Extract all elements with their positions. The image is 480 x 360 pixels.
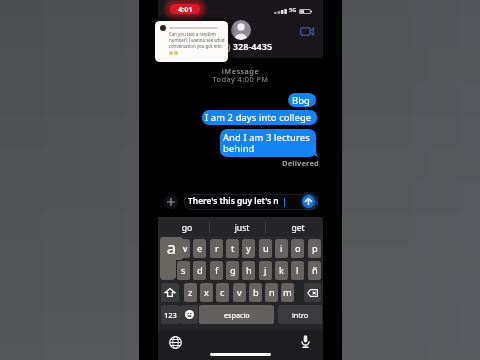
staticText: i: [280, 242, 283, 255]
staticText: v: [237, 286, 242, 299]
staticText: m: [283, 286, 292, 299]
button[interactable]: I am 2 days into college: [202, 110, 317, 125]
button[interactable]: f: [210, 261, 223, 280]
staticText: ñ: [312, 264, 318, 277]
staticText: b: [253, 286, 259, 299]
button[interactable]: l: [291, 261, 304, 280]
staticText: q: [165, 242, 171, 255]
staticText: 123: [164, 310, 177, 320]
staticText: f: [215, 264, 219, 277]
button[interactable]: p: [308, 239, 321, 258]
button[interactable]: Bbg: [288, 93, 316, 107]
button[interactable]: s: [177, 261, 190, 280]
staticText: Delivered: [282, 158, 319, 168]
button[interactable]: Emoji: [180, 305, 198, 324]
staticText: l: [296, 264, 299, 277]
button[interactable]: k: [275, 261, 288, 280]
button[interactable]: m: [281, 283, 294, 302]
button[interactable]: Shift: [161, 283, 179, 302]
staticText: And I am 3 lectures behind: [223, 131, 310, 155]
button[interactable]: h: [242, 261, 255, 280]
staticText: Bbg: [292, 94, 310, 107]
staticText: y: [246, 242, 251, 255]
staticText: a: [160, 236, 183, 258]
button[interactable]: ñ: [308, 261, 321, 280]
button[interactable]: d: [193, 261, 206, 280]
button[interactable]: r: [210, 239, 223, 258]
button[interactable]: Numbers: [161, 305, 180, 324]
staticText: just: [215, 222, 269, 234]
staticText: g: [230, 264, 236, 277]
staticText: Can you text a random number? I wanna se…: [169, 31, 225, 49]
button[interactable]: n: [265, 283, 278, 302]
staticText: Today 4:00 PM: [158, 74, 323, 84]
button[interactable]: a: [161, 261, 174, 280]
staticText: x: [204, 286, 209, 299]
staticText: 5G: [289, 6, 297, 14]
button[interactable]: o: [291, 239, 304, 258]
button[interactable]: Can you text a random number? I wanna se…: [155, 21, 228, 62]
button[interactable]: w: [177, 239, 190, 258]
staticText: There's this guy let's n: [188, 195, 279, 206]
staticText: s: [181, 264, 186, 277]
staticText: go: [160, 222, 214, 234]
staticText: z: [188, 286, 193, 299]
button[interactable]: Recording time 4:01: [170, 4, 200, 14]
button[interactable]: Backspace: [304, 283, 321, 302]
staticText: I am 2 days into college: [205, 111, 312, 124]
button[interactable]: And I am 3 lectures behind: [220, 129, 316, 157]
staticText: o: [295, 242, 301, 255]
button[interactable]: espacio: [199, 305, 274, 324]
button[interactable]: FaceTime: [300, 27, 314, 36]
button[interactable]: t: [226, 239, 239, 258]
button[interactable]: j: [259, 261, 272, 280]
staticText: n: [269, 286, 275, 299]
button[interactable]: i: [275, 239, 288, 258]
button[interactable]: z: [184, 283, 197, 302]
button[interactable]: Send: [302, 195, 315, 208]
staticText: e: [197, 242, 203, 255]
staticText: k: [279, 264, 284, 277]
staticText: h: [246, 264, 252, 277]
staticText: iMessage: [158, 66, 323, 76]
button[interactable]: Contact avatar: [231, 20, 251, 40]
staticText: espacio: [224, 310, 250, 320]
button[interactable]: Change keyboard: [169, 336, 182, 349]
button[interactable]: Dictate: [301, 335, 310, 348]
button[interactable]: q: [161, 239, 174, 258]
staticText: p: [312, 242, 318, 255]
staticText: u: [263, 242, 269, 255]
staticText: (414) 328-4435: [158, 40, 323, 52]
staticText: d: [197, 264, 203, 277]
button[interactable]: There's this guy let's n: [184, 194, 318, 210]
button[interactable]: b: [249, 283, 262, 302]
button[interactable]: x: [200, 283, 213, 302]
button[interactable]: g: [226, 261, 239, 280]
staticText: c: [220, 286, 225, 299]
staticText: intro: [292, 310, 309, 320]
button[interactable]: v: [233, 283, 246, 302]
staticText: get: [271, 222, 325, 234]
staticText: j: [264, 264, 267, 277]
button[interactable]: u: [259, 239, 272, 258]
staticText: 4:01: [178, 4, 193, 14]
button[interactable]: e: [193, 239, 206, 258]
staticText: r: [215, 242, 219, 255]
button[interactable]: Add attachment: [164, 195, 178, 209]
staticText: t: [231, 242, 235, 255]
button[interactable]: intro: [278, 305, 322, 324]
button[interactable]: y: [242, 239, 255, 258]
button[interactable]: c: [216, 283, 229, 302]
staticText: w: [180, 242, 188, 255]
